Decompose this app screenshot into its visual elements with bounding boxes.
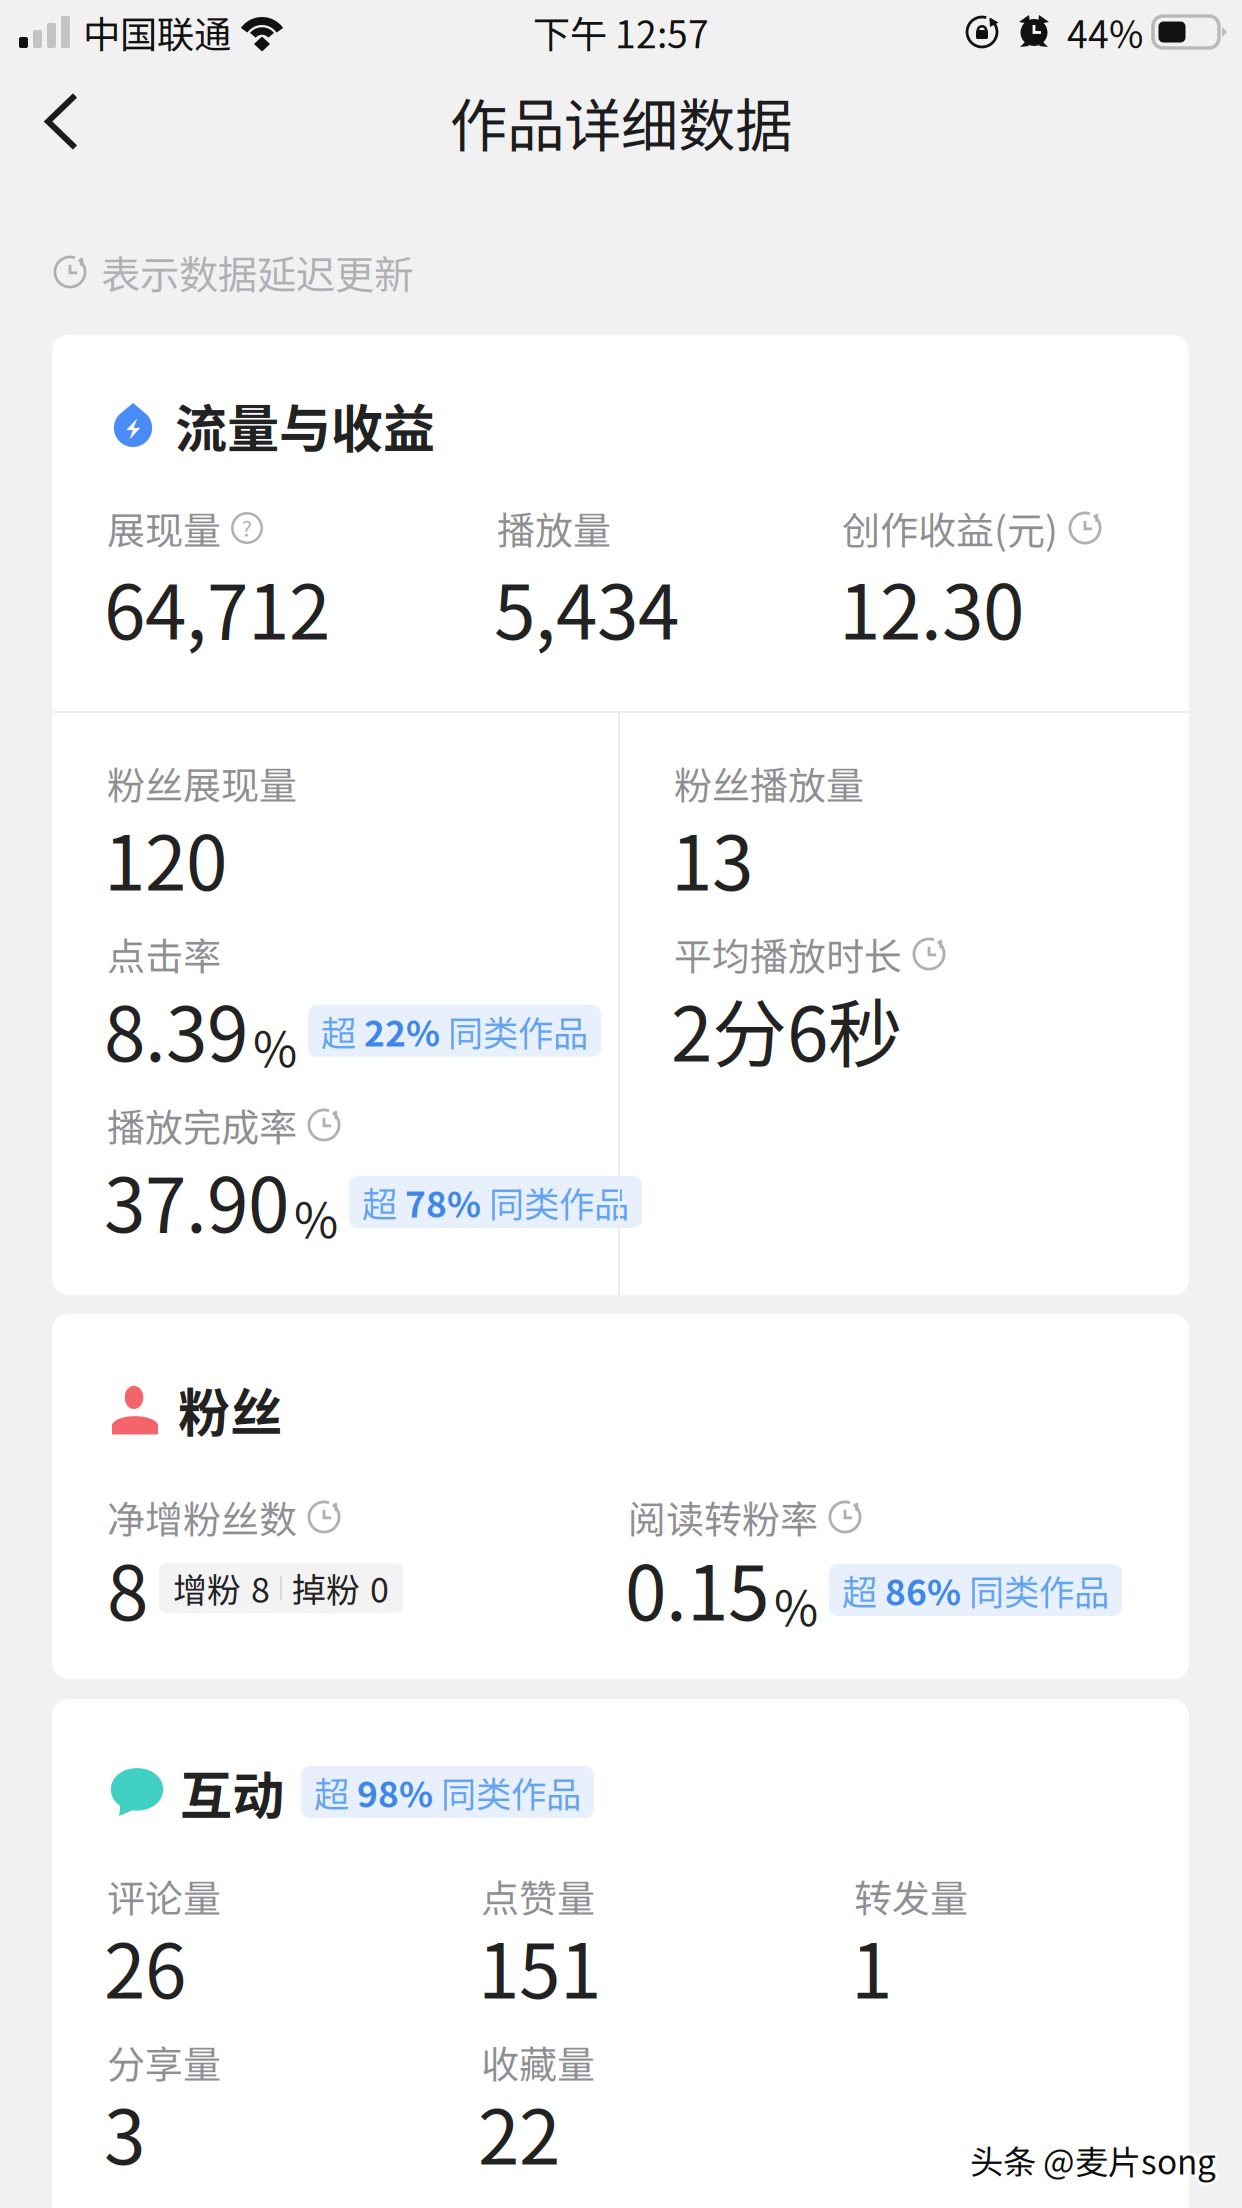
staticText: 8 (251, 1563, 270, 1613)
staticText: 151 (478, 1912, 601, 2020)
staticText: 收藏量 (481, 2034, 595, 2089)
staticText: % (774, 1571, 818, 1640)
staticText: 3 (104, 2078, 145, 2186)
staticText: 掉粉 (292, 1563, 360, 1613)
staticText: 超 (842, 1564, 877, 1616)
staticText: ? (241, 511, 252, 543)
staticText: 78% (405, 1176, 481, 1228)
staticText: 增粉 (173, 1563, 241, 1613)
staticText: 展现量 (107, 500, 221, 555)
staticText: 同类作品 (969, 1564, 1109, 1616)
staticText: % (253, 1012, 297, 1081)
staticText: 播放量 (497, 500, 611, 555)
staticText: 头条 @麦片song (968, 2133, 1214, 2182)
staticText: 5,434 (494, 553, 679, 661)
staticText: 平均播放时长 (674, 926, 902, 981)
staticText: 2分6秒 (671, 975, 903, 1083)
staticText: 点击率 (107, 926, 221, 981)
staticText: 分享量 (107, 2034, 221, 2089)
staticText: 120 (104, 804, 227, 912)
staticText: 8 (107, 1534, 148, 1642)
staticText: 头条 @麦片song (968, 2138, 1214, 2186)
staticText: 头条 @麦片song (972, 2133, 1218, 2182)
staticText: 阅读转粉率 (628, 1489, 818, 1544)
staticText: 头条 @麦片song (972, 2138, 1218, 2186)
staticText: 流量与收益 (175, 387, 435, 463)
staticText: 下午 12:57 (533, 5, 709, 59)
staticText: 13 (671, 804, 753, 912)
staticText: 同类作品 (448, 1005, 588, 1057)
staticText: 粉丝展现量 (107, 755, 297, 810)
staticText: 26 (104, 1912, 186, 2020)
staticText: 12.30 (839, 553, 1024, 661)
staticText: % (294, 1183, 338, 1252)
staticText: 表示数据延迟更新 (101, 243, 413, 300)
staticText: 超 (314, 1766, 349, 1818)
staticText: 22 (478, 2078, 560, 2186)
staticText: 98% (357, 1766, 433, 1818)
staticText: 超 (362, 1176, 397, 1228)
staticText: 22% (364, 1005, 440, 1057)
staticText: 作品详细数据 (450, 80, 792, 163)
staticText: 64,712 (104, 553, 330, 661)
staticText: 粉丝播放量 (674, 755, 864, 810)
staticText: 1 (851, 1912, 892, 2020)
staticText: 评论量 (107, 1868, 221, 1923)
staticText: 粉丝 (178, 1371, 282, 1447)
staticText: 86% (885, 1564, 961, 1616)
staticText: 8.39 (104, 975, 248, 1083)
staticText: 0 (370, 1563, 389, 1613)
button[interactable]: Back (0, 71, 114, 171)
staticText: 头条 @麦片song (970, 2136, 1216, 2184)
staticText: 中国联通 (83, 5, 231, 59)
staticText: 净增粉丝数 (107, 1489, 297, 1544)
staticText: 超 (321, 1005, 356, 1057)
staticText: 互动 (180, 1754, 284, 1830)
staticText: 0.15 (625, 1534, 769, 1642)
staticText: 点赞量 (481, 1868, 595, 1923)
staticText: 同类作品 (441, 1766, 581, 1818)
staticText: 创作收益(元) (842, 500, 1058, 555)
staticText: 转发量 (854, 1868, 968, 1923)
staticText: 37.90 (104, 1146, 289, 1254)
staticText: 同类作品 (489, 1176, 629, 1228)
staticText: 44% (1067, 5, 1143, 59)
staticText: 播放完成率 (107, 1097, 297, 1152)
